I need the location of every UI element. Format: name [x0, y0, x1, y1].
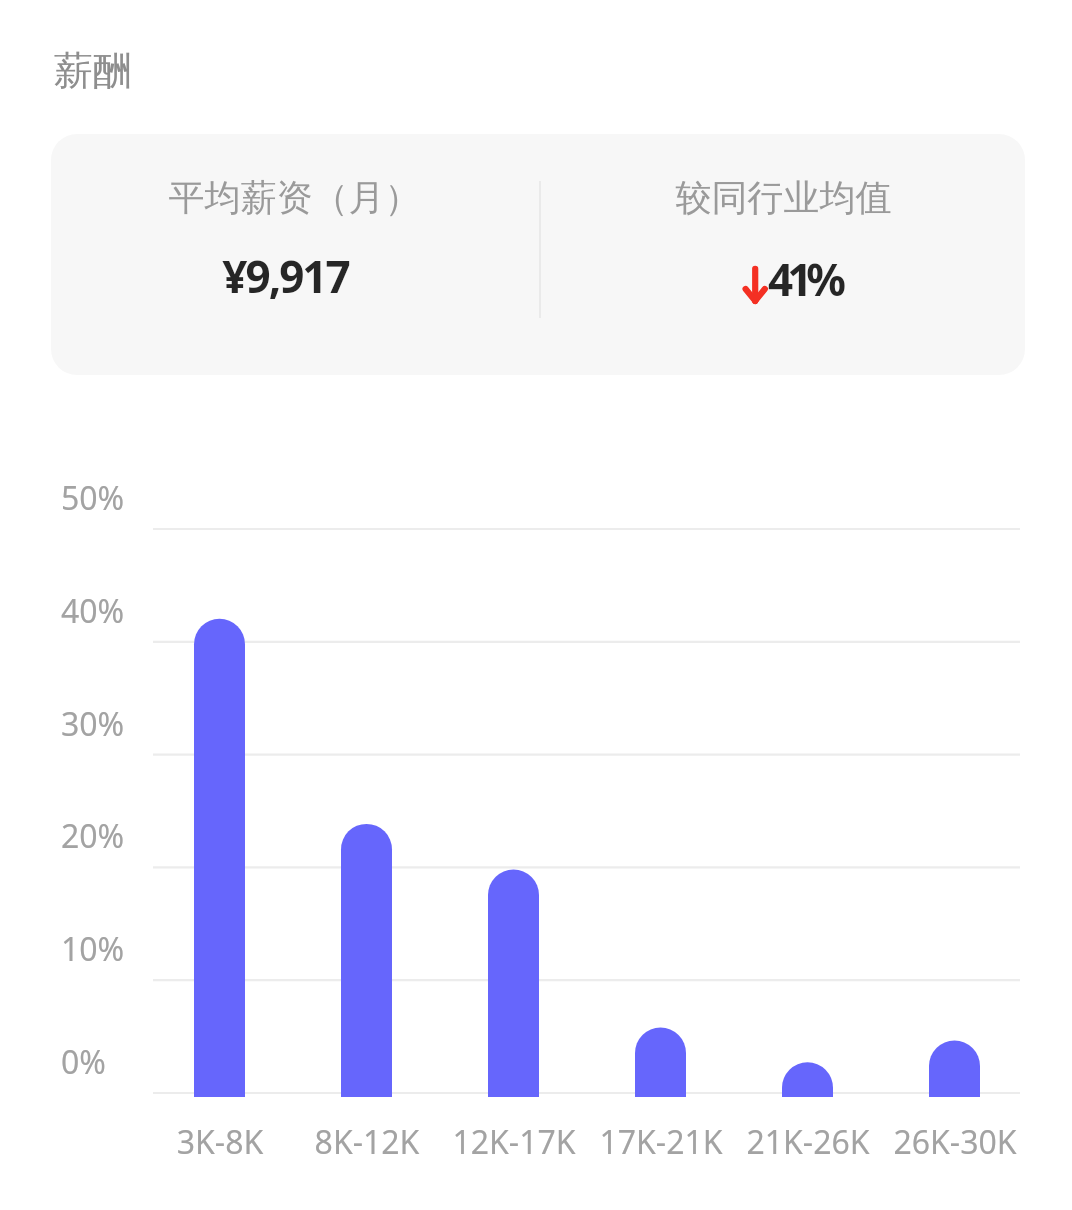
- staticText: 8K-12K: [287, 1120, 447, 1164]
- staticText: 0%: [61, 1040, 106, 1084]
- button[interactable]: 8K-12K: [287, 1116, 447, 1162]
- other: Below industry average: [742, 266, 769, 306]
- staticText: 20%: [61, 814, 125, 858]
- staticText: 平均薪资（月）: [51, 175, 538, 220]
- button[interactable]: 3K-8K: [140, 1116, 300, 1162]
- staticText: 50%: [61, 476, 125, 520]
- staticText: 30%: [61, 702, 125, 746]
- button[interactable]: 较同行业均值: [538, 134, 1025, 375]
- staticText: 薪酬: [54, 46, 132, 95]
- staticText: 26K-30K: [875, 1120, 1035, 1164]
- button[interactable]: 21K-26K: [728, 1116, 888, 1162]
- staticText: 40%: [61, 589, 125, 633]
- staticText: 12K-17K: [434, 1120, 594, 1164]
- staticText: ¥9,917: [51, 246, 529, 306]
- button[interactable]: 平均薪资（月）: [51, 134, 538, 375]
- staticText: 21K-26K: [728, 1120, 888, 1164]
- staticText: 3K-8K: [140, 1120, 300, 1164]
- staticText: 41%: [768, 249, 841, 309]
- staticText: 10%: [61, 927, 125, 971]
- staticText: 较同行业均值: [540, 175, 1025, 220]
- button[interactable]: 17K-21K: [581, 1116, 741, 1162]
- button[interactable]: 26K-30K: [875, 1116, 1035, 1162]
- button[interactable]: 12K-17K: [434, 1116, 594, 1162]
- staticText: 17K-21K: [581, 1120, 741, 1164]
